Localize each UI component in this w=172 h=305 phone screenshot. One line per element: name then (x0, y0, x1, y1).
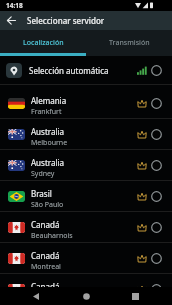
button[interactable]: Brasil (0, 181, 172, 211)
staticText: Canadá (31, 250, 60, 261)
staticText: Brasil (31, 188, 52, 199)
staticText: Alemania (31, 95, 67, 106)
staticText: Localización (23, 38, 64, 48)
staticText: Sydney (31, 169, 55, 179)
button[interactable]: Alemania (0, 88, 172, 118)
button[interactable]: Canadá (0, 243, 172, 273)
staticText: 14:18 (6, 1, 23, 10)
button[interactable]: Selección automática (0, 56, 172, 84)
staticText: Selección automática (29, 65, 109, 76)
button[interactable] (24, 287, 48, 305)
staticText: Transmisión (109, 38, 150, 48)
staticText: Australia (31, 157, 65, 168)
button[interactable]: Canadá (0, 212, 172, 242)
button[interactable] (123, 287, 147, 305)
button[interactable]: Localización (0, 30, 86, 56)
button[interactable]: Australia (0, 150, 172, 180)
button[interactable] (74, 287, 98, 305)
staticText: Canadá (31, 219, 60, 230)
staticText: Melbourne (31, 138, 68, 148)
button[interactable] (0, 11, 22, 30)
staticText: Beauharnois (31, 231, 73, 241)
button[interactable]: Canadá (0, 274, 172, 304)
staticText: Toronto (31, 293, 57, 303)
staticText: Frankfurt (31, 107, 62, 117)
staticText: Seleccionar servidor (27, 15, 105, 26)
staticText: São Paulo (31, 200, 64, 210)
staticText: Australia (31, 126, 65, 137)
staticText: Montreal (31, 262, 61, 272)
button[interactable]: Australia (0, 119, 172, 149)
staticText: Canadá (31, 281, 60, 292)
button[interactable]: Transmisión (86, 30, 172, 56)
